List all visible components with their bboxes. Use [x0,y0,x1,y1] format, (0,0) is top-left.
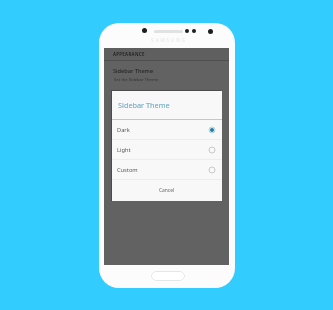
staticText: SAMSUNG [151,37,188,43]
staticText: Sidebar Theme [113,67,154,75]
button[interactable]: Dark [112,120,222,139]
button[interactable]: Custom [112,160,222,179]
staticText: Cancel [159,187,175,194]
staticText: Set the Sidebar Theme [114,77,159,83]
staticText: Light [117,146,131,154]
staticText: APPEARANCE [113,51,145,57]
button[interactable]: Light [112,140,222,159]
button[interactable]: Sidebar Theme [104,61,229,75]
staticText: Custom [117,166,138,174]
button[interactable]: Home [151,271,185,281]
button[interactable]: Cancel [112,180,222,201]
button[interactable]: APPEARANCE [104,48,229,60]
staticText: Dark [117,126,130,134]
staticText: Sidebar Theme [118,100,170,110]
